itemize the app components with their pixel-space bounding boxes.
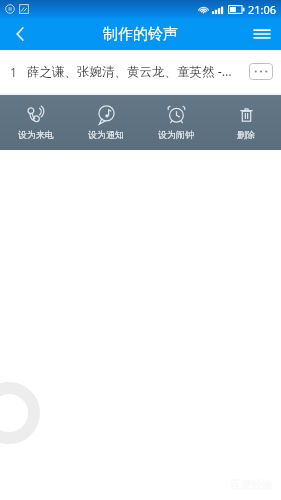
staticText: 1 [10,64,17,80]
button[interactable]: Menu [243,18,281,50]
staticText: 薛之谦、张婉清、黄云龙、童英然 -… [27,63,243,80]
button[interactable]: 设为来电 [0,101,71,144]
staticText: 删除 [237,129,255,140]
staticText: 设为闹钟 [158,129,194,140]
button[interactable]: More options [249,63,273,80]
button[interactable]: 删除 [211,101,281,144]
staticText: 制作的铃声 [103,25,178,44]
button[interactable]: 设为通知 [71,101,141,144]
button[interactable]: 1 [0,50,281,93]
button[interactable]: Back [0,18,40,50]
staticText: 设为通知 [88,129,124,140]
staticText: 设为来电 [18,129,54,140]
button[interactable]: 设为闹钟 [141,101,211,144]
staticText: 21:06 [248,2,277,17]
